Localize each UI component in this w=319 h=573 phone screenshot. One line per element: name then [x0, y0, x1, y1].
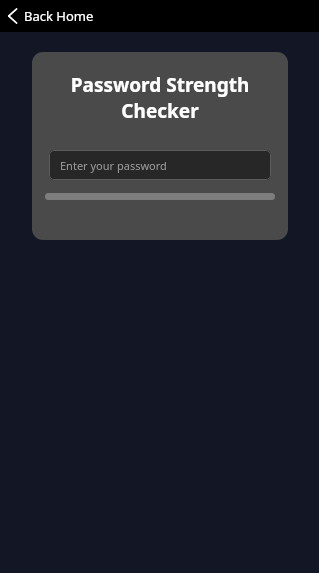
staticText: Password Strength Checker	[68, 72, 252, 123]
staticText: Enter your password	[60, 158, 167, 173]
staticText: Back Home	[24, 7, 94, 25]
button[interactable]: Back	[0, 0, 104, 32]
other: Back	[7, 8, 18, 24]
button[interactable]: Enter your password	[49, 150, 271, 180]
